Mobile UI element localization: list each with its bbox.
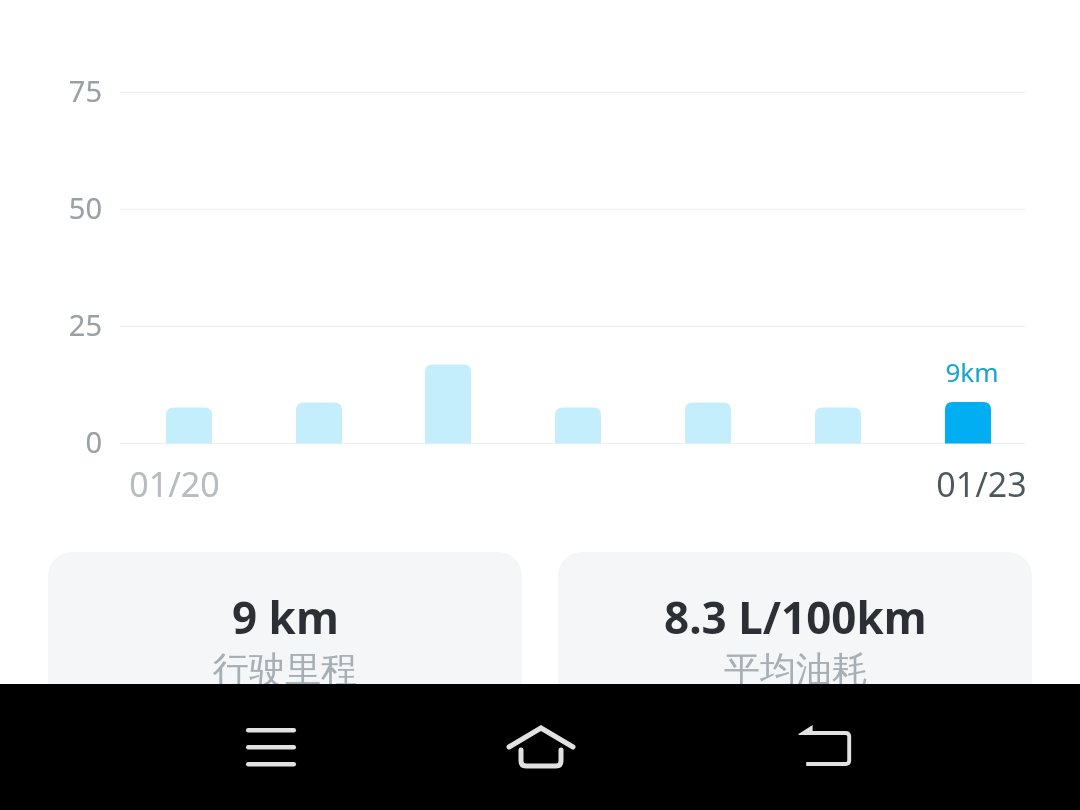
staticText: 8.3 L/100km xyxy=(664,587,927,647)
staticText: 50 xyxy=(68,188,102,227)
staticText: 平均油耗 xyxy=(724,647,868,692)
button[interactable]: 01/18 xyxy=(261,60,377,500)
button[interactable]: 8.3 L/100km xyxy=(558,552,1032,742)
button[interactable]: 01/22 xyxy=(780,60,896,500)
button[interactable]: 01/23 xyxy=(910,60,1026,500)
staticText: 75 xyxy=(68,71,102,110)
button[interactable]: 01/20 xyxy=(520,60,636,500)
staticText: 9 km xyxy=(232,587,339,647)
staticText: 01/20 xyxy=(129,461,220,507)
button[interactable]: Recent apps xyxy=(208,684,334,810)
staticText: 25 xyxy=(68,305,102,344)
button[interactable]: 01/21 xyxy=(650,60,766,500)
button[interactable]: Back xyxy=(759,684,885,810)
staticText: 9km xyxy=(945,354,999,389)
button[interactable]: Home xyxy=(478,684,604,810)
staticText: 0 xyxy=(85,422,102,461)
button[interactable]: 9 km xyxy=(48,552,522,742)
staticText: 01/23 xyxy=(936,461,1027,507)
staticText: 行驶里程 xyxy=(213,647,357,692)
button[interactable]: 01/19 xyxy=(390,60,506,500)
button[interactable]: 01/17 xyxy=(131,60,247,500)
